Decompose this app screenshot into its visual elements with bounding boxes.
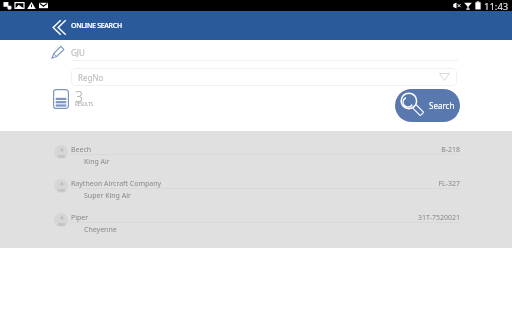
staticText: Super King Air xyxy=(84,191,131,201)
staticText: 4 xyxy=(60,146,64,154)
staticText: RegNo xyxy=(78,72,104,83)
staticText: FEB xyxy=(58,222,65,227)
button[interactable]: 4 xyxy=(0,169,512,203)
staticText: 11:43 xyxy=(484,0,509,11)
button[interactable]: RegNo xyxy=(71,68,457,86)
staticText: 3 xyxy=(75,87,83,106)
staticText: Beech xyxy=(71,145,92,155)
button[interactable]: 4 xyxy=(0,135,512,169)
staticText: Raytheon Aircraft Company xyxy=(71,179,162,189)
button[interactable]: Back xyxy=(46,11,512,40)
staticText: FL-327 xyxy=(0,179,460,189)
staticText: King Air xyxy=(84,157,110,167)
button[interactable]: 4 xyxy=(0,203,512,237)
staticText: FEB xyxy=(58,188,65,193)
staticText: Piper xyxy=(71,213,89,223)
staticText: Cheyenne xyxy=(84,225,117,235)
button[interactable]: Search xyxy=(395,89,460,122)
staticText: B-218 xyxy=(0,145,460,155)
staticText: FEB xyxy=(58,154,65,159)
staticText: 4 xyxy=(60,214,64,222)
staticText: 31T-7520021 xyxy=(0,213,460,223)
staticText: RESULTS xyxy=(75,101,93,107)
staticText: ONLINE SEARCH xyxy=(71,21,122,31)
staticText: GJU xyxy=(71,47,85,58)
staticText: 4 xyxy=(60,180,64,188)
staticText: Search xyxy=(429,100,455,111)
